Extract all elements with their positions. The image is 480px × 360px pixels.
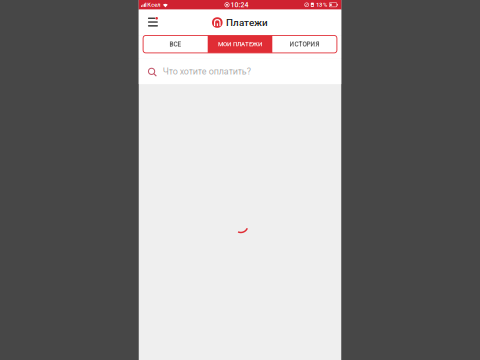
button[interactable]: МОИ ПЛАТЕЖИ xyxy=(208,35,272,53)
staticText: 10:24 xyxy=(231,1,249,9)
staticText: ИСТОРИЯ xyxy=(290,40,320,48)
staticText: Ксел xyxy=(147,1,160,8)
button[interactable]: ВСЕ xyxy=(143,35,208,53)
staticText: Платежи xyxy=(226,17,268,28)
staticText: 13 % xyxy=(316,1,327,8)
button[interactable]: Меню xyxy=(139,12,165,33)
staticText: Что хотите оплатить? xyxy=(163,66,251,77)
staticText: ВСЕ xyxy=(169,40,181,48)
button[interactable]: ИСТОРИЯ xyxy=(272,35,337,53)
button[interactable]: Что хотите оплатить? xyxy=(139,59,341,84)
staticText: МОИ ПЛАТЕЖИ xyxy=(218,41,262,48)
